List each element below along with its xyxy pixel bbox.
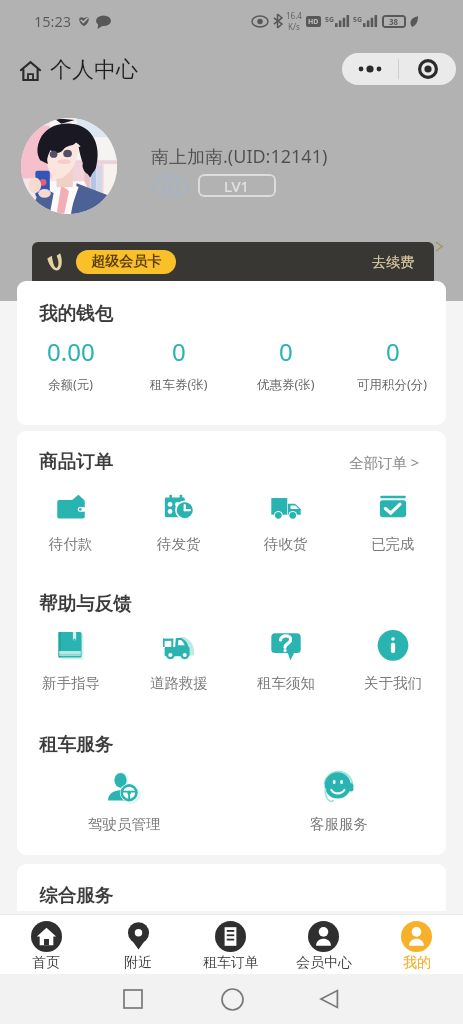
staticText: 去续费 [372, 254, 414, 272]
button[interactable]: 待付款 [17, 491, 125, 553]
staticText: 租车券(张) [150, 376, 208, 393]
button[interactable]: 关于我们 [339, 630, 446, 692]
staticText: K/s [288, 21, 300, 32]
staticText: 全部订单 > [349, 452, 420, 472]
staticText: 关于我们 [364, 674, 422, 692]
button[interactable]: 超级会员卡 [32, 242, 434, 286]
button[interactable]: 租车须知 [232, 630, 339, 692]
staticText: 道路救援 [150, 674, 208, 692]
staticText: 南上加南.(UID:12141) [151, 144, 328, 169]
button[interactable]: 0 [125, 335, 232, 393]
staticText: 优惠券(张) [257, 376, 315, 393]
staticText: HD [308, 17, 319, 27]
staticText: 租车服务 [39, 733, 113, 756]
staticText: 会员中心 [296, 954, 352, 972]
button[interactable]: Back [312, 982, 346, 1016]
button[interactable]: 附近 [92, 914, 184, 974]
staticText: 商品订单 [39, 450, 113, 473]
staticText: 租车订单 [203, 954, 259, 972]
staticText: 新手指导 [42, 674, 100, 692]
button[interactable]: Recents [116, 982, 150, 1016]
staticText: 16.4 [286, 10, 302, 21]
staticText: 个人中心 [50, 56, 138, 84]
staticText: 帮助与反馈 [39, 592, 132, 615]
staticText: 待付款 [49, 535, 93, 553]
staticText: 5G [325, 15, 335, 25]
button[interactable]: 待收货 [232, 491, 339, 553]
button[interactable]: 驾驶员管理 [17, 771, 231, 833]
button[interactable]: 全部订单 > [349, 452, 420, 472]
button[interactable]: 0.00 [17, 335, 125, 393]
staticText: 余额(元) [48, 376, 94, 393]
staticText: 附近 [124, 954, 152, 972]
staticText: 可用积分(分) [357, 376, 428, 393]
button[interactable]: 待发货 [125, 491, 232, 553]
staticText: 15:23 [34, 11, 72, 31]
button[interactable]: Close mini program [399, 53, 456, 85]
button[interactable]: 新手指导 [17, 630, 125, 692]
staticText: 首页 [32, 954, 60, 972]
button[interactable]: LV1 [198, 174, 276, 197]
button[interactable]: 0 [339, 335, 446, 393]
button[interactable]: 去续费 [372, 254, 414, 272]
staticText: 已完成 [371, 535, 415, 553]
staticText: 我的钱包 [39, 302, 113, 325]
staticText: 综合服务 [39, 884, 113, 907]
button[interactable]: 超级会员卡 [76, 250, 176, 274]
staticText: 5G [353, 15, 363, 25]
staticText: 38 [389, 16, 399, 27]
staticText: 超级会员卡 [91, 253, 161, 271]
staticText: 待发货 [157, 535, 201, 553]
button[interactable]: 租车订单 [184, 914, 277, 974]
button[interactable]: 会员中心 [277, 914, 370, 974]
staticText: 0.00 [47, 335, 95, 368]
staticText: 0 [386, 335, 400, 368]
button[interactable]: 客服服务 [231, 771, 446, 833]
staticText: 租车须知 [257, 674, 315, 692]
staticText: 客服服务 [310, 815, 368, 833]
button[interactable]: 首页 [0, 914, 92, 974]
staticText: 0 [172, 335, 186, 368]
button[interactable]: 道路救援 [125, 630, 232, 692]
button[interactable]: 0 [232, 335, 339, 393]
staticText: 我的 [403, 954, 431, 972]
staticText: 待收货 [264, 535, 308, 553]
staticText: LV1 [224, 176, 250, 196]
button[interactable]: 已完成 [339, 491, 446, 553]
staticText: 0 [279, 335, 293, 368]
button[interactable]: More options [342, 53, 398, 85]
button[interactable]: 我的 [370, 914, 463, 974]
button[interactable]: Home [215, 982, 249, 1016]
staticText: 驾驶员管理 [88, 815, 161, 833]
button[interactable]: Profile photo [21, 118, 117, 214]
button[interactable]: Home [17, 58, 43, 84]
